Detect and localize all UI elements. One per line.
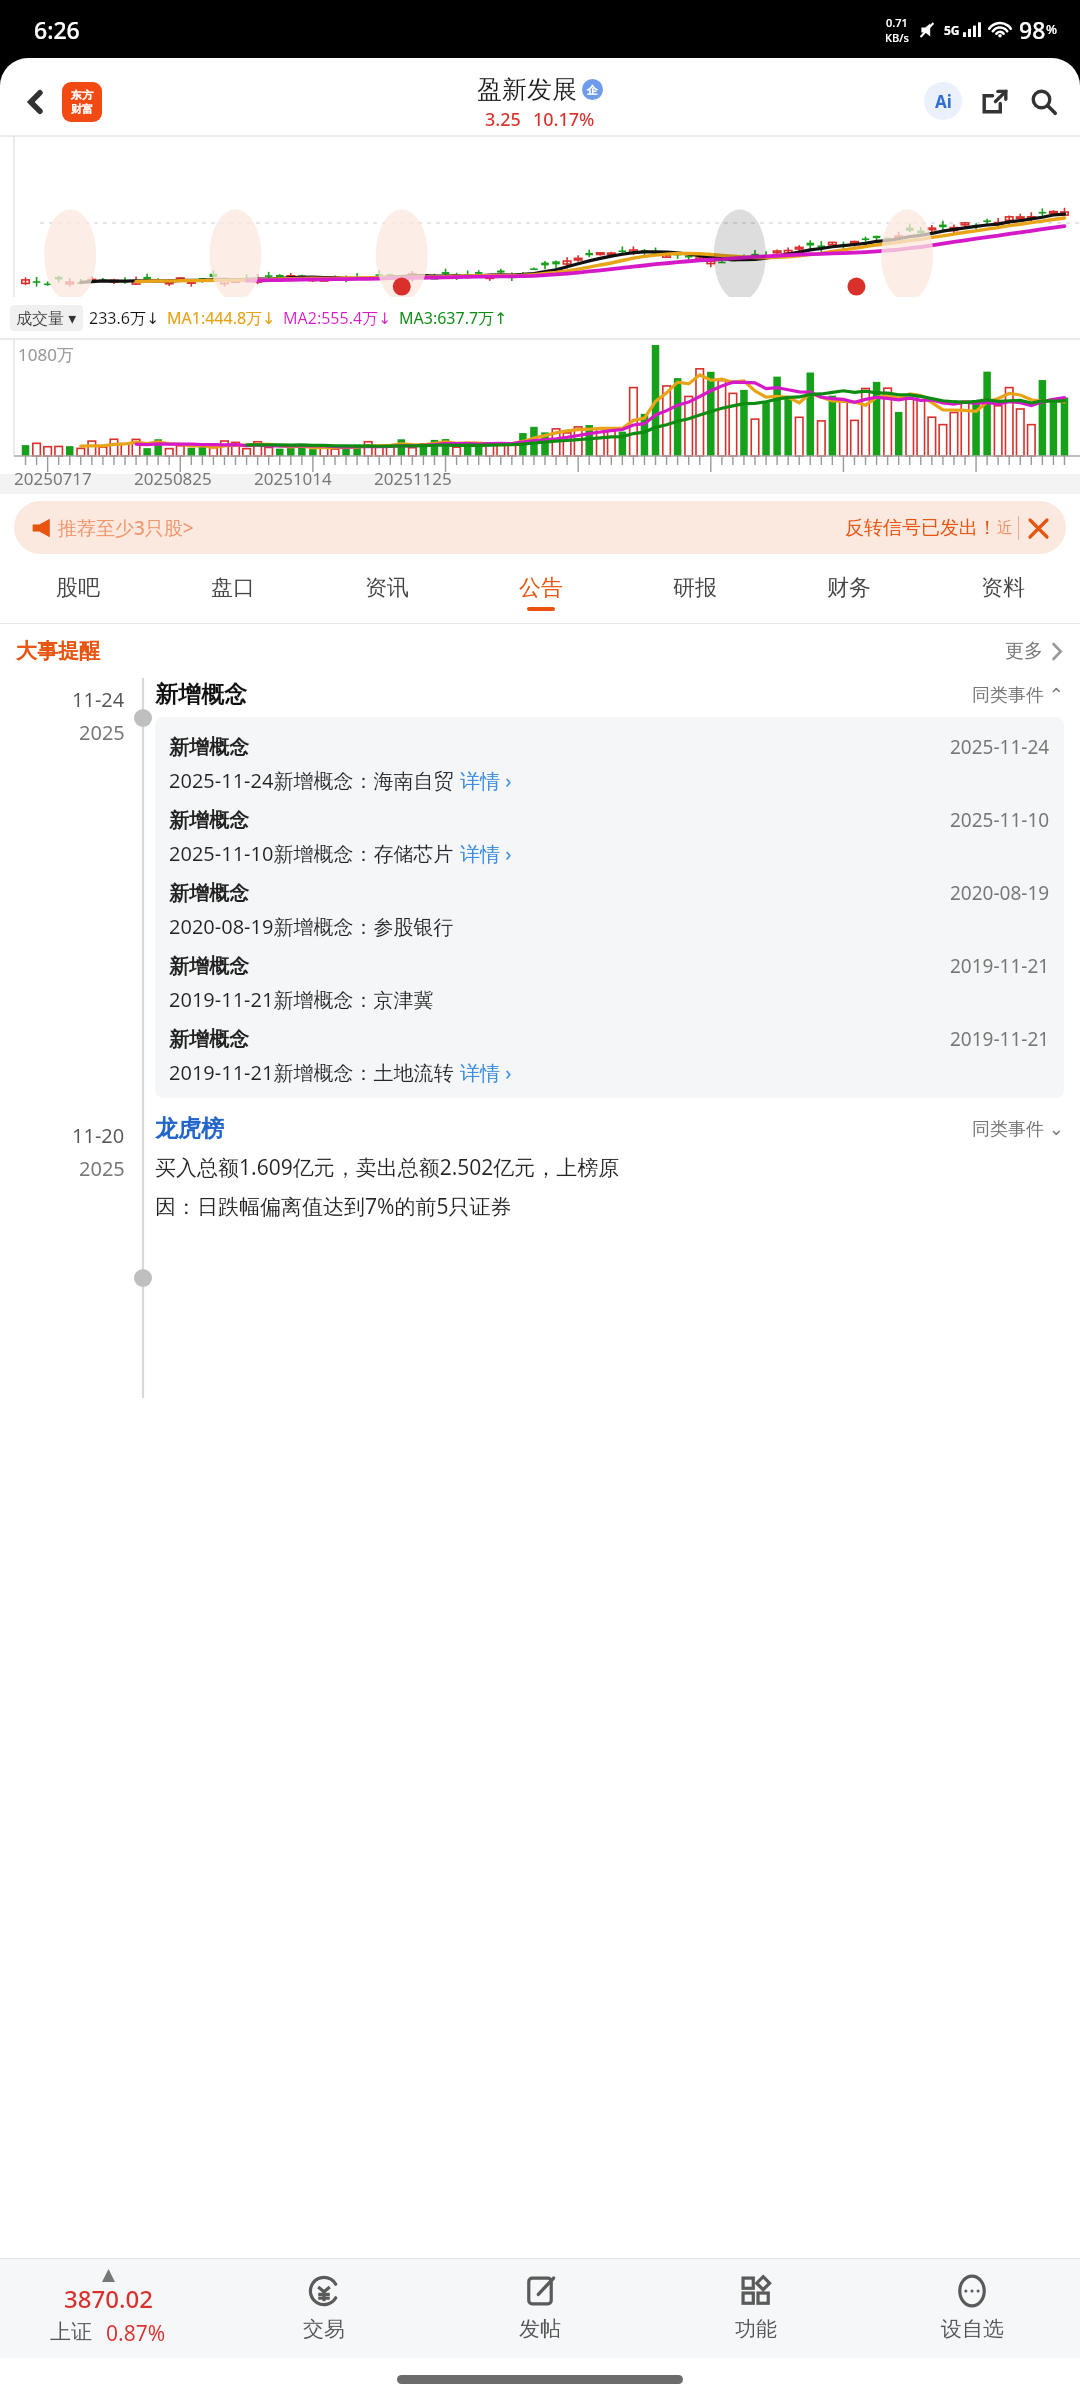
staticText: 新增概念	[169, 881, 249, 906]
staticText: 2025-11-10	[950, 807, 1050, 833]
button[interactable]: 财务	[772, 561, 926, 623]
button[interactable]: 大事提醒	[16, 624, 1064, 678]
staticText: 20250825	[134, 467, 212, 490]
staticText: 2019-11-21新增概念：京津冀	[169, 986, 434, 1013]
button[interactable]: 成交量 ▾	[16, 307, 77, 329]
staticText: 设自选	[941, 2316, 1004, 2342]
staticText: 反转信号已发出！	[845, 516, 997, 540]
staticText: 11-24	[72, 686, 125, 713]
staticText: MA3:637.7万↑	[399, 307, 508, 329]
button[interactable]: 发帖	[432, 2258, 648, 2358]
staticText: 详情 ›	[460, 840, 512, 867]
staticText: 股吧	[56, 574, 100, 602]
button[interactable]: 新增概念	[169, 798, 1050, 871]
staticText: MA1:444.8万↓	[167, 307, 276, 329]
staticText: 资料	[981, 574, 1025, 602]
staticText: 2025	[79, 719, 125, 746]
button[interactable]: 推荐至少3只股>	[14, 501, 1066, 554]
staticText: 发帖	[519, 2316, 561, 2342]
button[interactable]: Search	[1020, 78, 1066, 124]
staticText: 2020-08-19	[950, 880, 1050, 906]
staticText: 盘口	[211, 574, 255, 602]
staticText: 10.17%	[533, 107, 595, 132]
staticText: 交易	[303, 2316, 345, 2342]
staticText: 大事提醒	[16, 638, 100, 664]
button[interactable]: 研报	[618, 561, 772, 623]
staticText: 2025-11-10新增概念：存储芯片	[169, 840, 454, 867]
button[interactable]: 功能	[648, 2258, 864, 2358]
staticText: 0.71	[886, 15, 908, 30]
staticText: Ai	[935, 90, 952, 113]
button[interactable]: Back	[14, 80, 58, 124]
staticText: 龙虎榜	[155, 1114, 224, 1143]
staticText: 新增概念	[169, 954, 249, 979]
button[interactable]: 资料	[926, 561, 1080, 623]
staticText: 详情 ›	[460, 1059, 512, 1086]
button[interactable]: 设自选	[864, 2258, 1080, 2358]
button[interactable]: 盘口	[155, 561, 310, 623]
staticText: MA2:555.4万↓	[283, 307, 392, 329]
staticText: 新增概念	[169, 1027, 249, 1052]
staticText: 功能	[735, 2316, 777, 2342]
staticText: 东方	[71, 88, 93, 102]
staticText: 2019-11-21	[950, 1026, 1050, 1052]
staticText: 2019-11-21新增概念：土地流转	[169, 1059, 454, 1086]
button[interactable]: 龙虎榜	[155, 1114, 1064, 1143]
button[interactable]: 交易	[216, 2258, 432, 2358]
button[interactable]: 资讯	[310, 561, 464, 623]
staticText: 同类事件 ⌃	[972, 682, 1064, 707]
staticText: 财富	[71, 102, 93, 116]
button[interactable]: 公告	[464, 561, 618, 623]
staticText: 盈新发展	[477, 74, 577, 105]
staticText: 近	[997, 518, 1013, 538]
staticText: 2025-11-24新增概念：海南自贸	[169, 767, 454, 794]
button[interactable]: 东方	[62, 82, 102, 122]
staticText: 5G	[944, 22, 960, 38]
staticText: 20251014	[254, 467, 332, 490]
staticText: 3.25	[485, 107, 521, 132]
staticText: 2025-11-24	[950, 734, 1050, 760]
staticText: 详情 ›	[460, 767, 512, 794]
button[interactable]: Share	[972, 78, 1018, 124]
staticText: 上证	[50, 2319, 92, 2345]
staticText: 成交量 ▾	[16, 307, 77, 329]
staticText: 6:26	[34, 14, 80, 45]
staticText: 更多	[1005, 639, 1043, 663]
button[interactable]: 股吧	[0, 561, 155, 623]
staticText: 1080万	[18, 343, 74, 366]
staticText: 资讯	[365, 574, 409, 602]
staticText: 20250717	[14, 467, 92, 490]
staticText: 11-20	[72, 1122, 125, 1149]
staticText: 同类事件 ⌄	[972, 1116, 1064, 1141]
staticText: 2020-08-19新增概念：参股银行	[169, 913, 454, 940]
button[interactable]: Close	[1026, 516, 1050, 540]
staticText: 财务	[827, 574, 871, 602]
button[interactable]: 新增概念	[169, 725, 1050, 798]
button[interactable]: 新增概念	[169, 871, 1050, 944]
staticText: 因：日跌幅偏离值达到7%的前5只证券	[155, 1192, 512, 1221]
staticText: 企	[587, 83, 598, 97]
staticText: 新增概念	[169, 808, 249, 833]
staticText: 公告	[519, 574, 563, 602]
staticText: 0.87%	[106, 2319, 166, 2348]
staticText: %	[1046, 20, 1058, 38]
staticText: 新增概念	[169, 735, 249, 760]
button[interactable]: 新增概念	[169, 944, 1050, 1017]
staticText: 2025	[79, 1155, 125, 1182]
button[interactable]: 3870.02	[0, 2269, 216, 2348]
staticText: 研报	[673, 574, 717, 602]
button[interactable]: AI	[920, 78, 966, 124]
staticText: 98	[1019, 14, 1046, 45]
staticText: 233.6万↓	[89, 307, 160, 329]
staticText: 推荐至少3只股>	[58, 515, 194, 541]
button[interactable]: 新增概念	[155, 680, 1064, 709]
staticText: KB/s	[885, 30, 909, 45]
staticText: 2019-11-21	[950, 953, 1050, 979]
staticText: 3870.02	[64, 2282, 153, 2315]
button[interactable]: 新增概念	[169, 1017, 1050, 1090]
staticText: 20251125	[374, 467, 452, 490]
staticText: 买入总额1.609亿元，卖出总额2.502亿元，上榜原	[155, 1153, 620, 1182]
staticText: 新增概念	[155, 680, 247, 709]
